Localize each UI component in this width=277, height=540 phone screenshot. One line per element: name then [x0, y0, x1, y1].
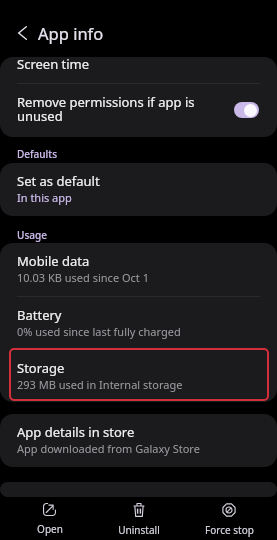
button[interactable]: Remove permissions if app is unused [234, 102, 259, 118]
button[interactable]: Screen time [0, 57, 277, 83]
staticText: Defaults [17, 147, 57, 161]
staticText: Battery [17, 306, 62, 324]
staticText: App downloaded from Galaxy Store [17, 441, 200, 456]
staticText: Screen time [17, 57, 90, 73]
staticText: App info [38, 22, 104, 44]
staticText: Uninstall [118, 523, 160, 537]
button[interactable]: Battery [0, 297, 277, 349]
button[interactable]: Navigate up [11, 22, 33, 44]
staticText: Usage [17, 228, 47, 242]
staticText: Force stop [205, 523, 254, 537]
staticText: In this app [17, 190, 72, 205]
staticText: App details in store [17, 423, 135, 441]
staticText: Storage [17, 359, 65, 377]
button[interactable]: Set as default [0, 163, 277, 216]
staticText: Remove permissions if app is unused [17, 93, 207, 125]
staticText: 0% used since last fully charged [17, 324, 181, 339]
staticText: 10.03 KB used since Oct 1 [17, 270, 149, 285]
button[interactable]: Uninstall [94, 497, 184, 540]
staticText: 293 MB used in Internal storage [17, 377, 183, 392]
staticText: Set as default [17, 172, 100, 190]
button[interactable]: Mobile data [0, 243, 277, 296]
button[interactable]: Storage [0, 350, 277, 402]
button[interactable]: Force stop [184, 497, 274, 540]
button[interactable]: App details in store [0, 414, 277, 467]
button[interactable]: Remove permissions if app is unused [0, 84, 277, 137]
staticText: Mobile data [17, 252, 90, 270]
button[interactable]: Open [5, 497, 94, 540]
staticText: Open [37, 522, 63, 536]
